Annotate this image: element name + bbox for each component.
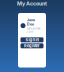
staticText: My Account [17,0,47,7]
button[interactable]: Register [20,43,43,48]
staticText: Sign In [25,37,38,42]
staticText: Register [24,43,40,48]
staticText: jane@mail.com [27,27,42,33]
staticText: Jane Doe [27,18,35,26]
button[interactable]: Sign In [20,37,43,42]
